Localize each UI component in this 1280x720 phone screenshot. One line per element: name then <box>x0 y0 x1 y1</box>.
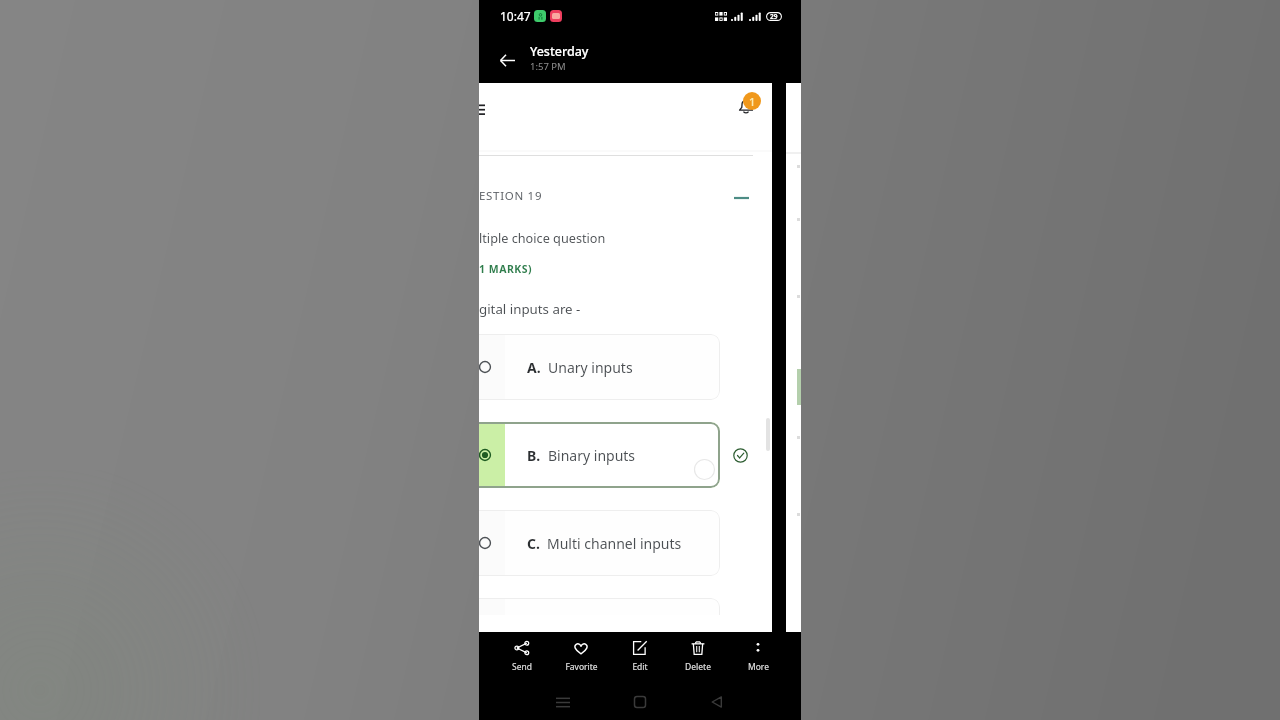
staticText: Send <box>512 661 532 673</box>
button[interactable]: B. <box>479 422 720 488</box>
staticText: Yesterday <box>530 43 589 60</box>
staticText: A. <box>527 358 541 377</box>
staticText: 1 MARKS) <box>479 262 533 276</box>
staticText: Binary inputs <box>548 446 636 465</box>
button[interactable]: Edit <box>613 640 667 680</box>
button[interactable]: Back <box>703 688 731 716</box>
staticText: 29 <box>770 12 778 21</box>
button[interactable]: Open menu <box>479 96 492 123</box>
staticText: Edit <box>632 661 648 673</box>
staticText: 1:57 PM <box>530 60 566 73</box>
staticText: Multi channel inputs <box>547 534 682 553</box>
button[interactable]: Home <box>626 688 654 716</box>
staticText: 1 <box>749 94 756 109</box>
button[interactable]: Send <box>495 640 549 680</box>
button[interactable]: Favorite <box>554 640 608 680</box>
staticText: B. <box>527 446 541 465</box>
button[interactable]: C. <box>479 510 720 576</box>
button[interactable]: Recents <box>549 688 577 716</box>
staticText: gital inputs are - <box>479 300 581 318</box>
staticText: 10:47 <box>500 8 531 24</box>
button[interactable]: A. <box>479 334 720 400</box>
staticText: More <box>748 661 769 673</box>
staticText: ltiple choice question <box>479 229 606 246</box>
button[interactable]: Collapse question <box>729 186 753 210</box>
button[interactable]: Delete <box>671 640 725 680</box>
staticText: Unary inputs <box>548 358 633 377</box>
button[interactable]: Notifications <box>733 88 761 116</box>
staticText: Favorite <box>565 661 598 673</box>
staticText: C. <box>527 534 540 553</box>
button[interactable]: Back <box>490 43 525 78</box>
staticText: ESTION 19 <box>479 188 543 204</box>
button[interactable]: More <box>731 640 785 680</box>
staticText: Delete <box>685 661 711 673</box>
